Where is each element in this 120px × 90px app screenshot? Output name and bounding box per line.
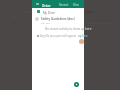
staticText: Two of these <box>24 10 40 14</box>
button[interactable]: Safety Guidelines (doc) <box>32 16 84 24</box>
staticText: No recent activity to show up here <box>45 27 92 31</box>
staticText: Any file you open will appear <box>40 34 78 38</box>
button[interactable]: More options <box>76 17 80 21</box>
staticText: Drive <box>42 3 51 7</box>
button[interactable]: Files <box>73 3 80 7</box>
button[interactable]: Menu <box>35 2 39 6</box>
staticText: Safety Guidelines (doc) <box>41 17 75 21</box>
button[interactable]: Create new <box>74 82 79 87</box>
staticText: Failing <box>84 10 93 14</box>
button[interactable]: Any file you open will appear <box>37 34 88 38</box>
staticText: up here <box>78 34 88 38</box>
staticText: My Drive <box>43 11 55 15</box>
button[interactable]: My Drive <box>32 9 84 15</box>
staticText: 2:41 PM <box>41 22 50 25</box>
button[interactable]: Recent <box>59 3 69 7</box>
